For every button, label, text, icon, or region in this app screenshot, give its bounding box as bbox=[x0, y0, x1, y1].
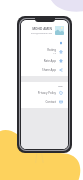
staticText: Share App bbox=[42, 68, 56, 72]
staticText: amin@example.com bbox=[31, 32, 52, 35]
button[interactable]: Rating bbox=[21, 47, 68, 56]
staticText: App bbox=[58, 84, 63, 87]
staticText: Privacy Policy bbox=[37, 91, 56, 95]
button[interactable]: Notifications bbox=[21, 39, 68, 47]
other: Notifications bbox=[59, 41, 63, 45]
staticText: Contact bbox=[45, 100, 56, 104]
other: Profile photo bbox=[55, 26, 64, 35]
button[interactable]: Rate App bbox=[21, 56, 68, 65]
staticText: 1.0 bbox=[53, 52, 56, 55]
staticText: Rate App bbox=[43, 59, 56, 63]
button[interactable]: Contact bbox=[21, 97, 68, 106]
button[interactable]: Share App bbox=[21, 65, 68, 74]
staticText: MOHD AMIN bbox=[32, 27, 52, 31]
staticText: Rating bbox=[47, 48, 56, 52]
button[interactable]: MOHD AMIN bbox=[21, 25, 68, 37]
button[interactable]: Privacy Policy bbox=[21, 88, 68, 97]
